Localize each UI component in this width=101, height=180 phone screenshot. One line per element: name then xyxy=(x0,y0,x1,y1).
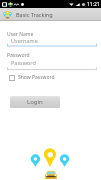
button[interactable]: Login xyxy=(10,96,60,108)
staticText: Basic Tracking xyxy=(16,11,53,18)
button[interactable]: Show Password xyxy=(7,72,57,83)
staticText: Password xyxy=(11,59,36,66)
staticText: User Name xyxy=(7,31,34,38)
button[interactable]: Password xyxy=(0,59,101,70)
button[interactable]: Username xyxy=(0,37,101,47)
staticText: Username xyxy=(11,37,38,44)
staticText: Password xyxy=(7,52,30,59)
staticText: 11:21 xyxy=(87,1,100,8)
staticText: Login xyxy=(27,98,43,106)
staticText: Show Password xyxy=(18,74,55,81)
